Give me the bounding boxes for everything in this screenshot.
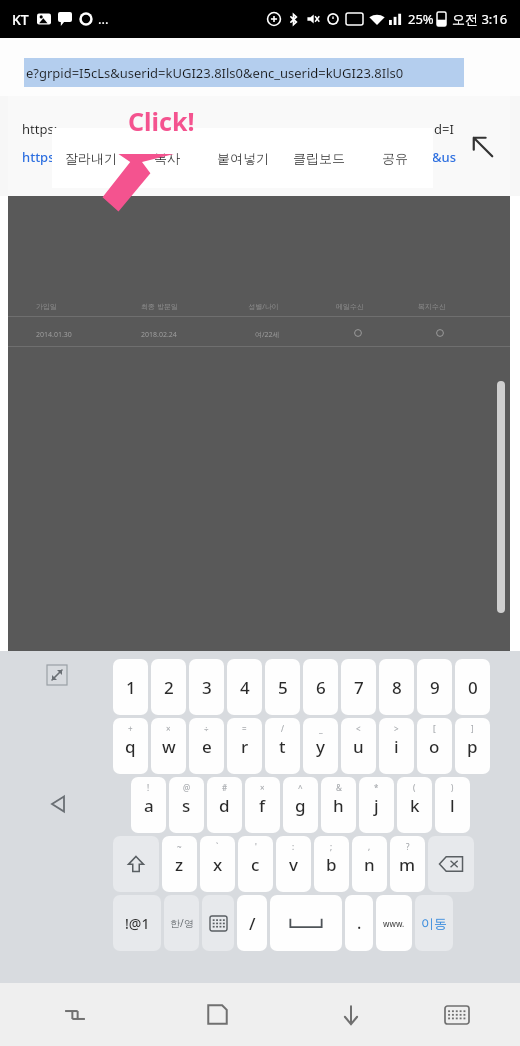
staticText: j bbox=[374, 794, 379, 817]
staticText: 가입일 bbox=[36, 302, 57, 311]
staticText: y bbox=[316, 735, 325, 758]
button[interactable]: 6 bbox=[303, 659, 338, 715]
staticText: / bbox=[249, 912, 256, 935]
button[interactable] bbox=[113, 836, 159, 892]
button[interactable]: Recent apps bbox=[0, 983, 149, 1046]
staticText: / bbox=[281, 723, 284, 734]
button[interactable]: ; bbox=[314, 836, 349, 892]
button[interactable]: space bbox=[270, 895, 342, 951]
button[interactable]: 공유 bbox=[357, 128, 433, 188]
button[interactable]: 9 bbox=[417, 659, 452, 715]
button[interactable]: * bbox=[359, 777, 394, 833]
staticText: > bbox=[394, 723, 399, 734]
button[interactable]: [ bbox=[417, 718, 452, 774]
button[interactable]: × bbox=[245, 777, 280, 833]
button[interactable]: ` bbox=[200, 836, 235, 892]
button[interactable]: 7 bbox=[341, 659, 376, 715]
button[interactable]: = bbox=[227, 718, 262, 774]
button[interactable]: / bbox=[237, 895, 267, 951]
staticText: ) bbox=[451, 782, 454, 793]
button[interactable]: # bbox=[207, 777, 242, 833]
staticText: 붙여넣기 bbox=[217, 150, 269, 166]
staticText: _ bbox=[319, 723, 323, 734]
button[interactable]: Previous bbox=[44, 789, 74, 819]
staticText: # bbox=[222, 782, 228, 793]
staticText: 복사 bbox=[154, 150, 180, 166]
staticText: 3 bbox=[202, 676, 212, 699]
button[interactable]: & bbox=[321, 777, 356, 833]
button[interactable]: < bbox=[341, 718, 376, 774]
button[interactable]: × bbox=[151, 718, 186, 774]
button[interactable]: 복사 bbox=[129, 128, 205, 188]
button[interactable]: 2 bbox=[151, 659, 186, 715]
button[interactable]: : bbox=[276, 836, 311, 892]
button[interactable]: 3 bbox=[189, 659, 224, 715]
button[interactable]: 클립보드 bbox=[281, 128, 357, 188]
button[interactable]: ^ bbox=[283, 777, 318, 833]
staticText: https bbox=[22, 148, 55, 166]
button[interactable]: _ bbox=[303, 718, 338, 774]
staticText: 최종 방문일 bbox=[141, 302, 178, 312]
staticText: 8 bbox=[392, 676, 402, 699]
staticText: 1 bbox=[126, 676, 136, 699]
staticText: g bbox=[295, 794, 306, 817]
staticText: h bbox=[333, 794, 344, 817]
staticText: ] bbox=[471, 723, 474, 734]
button[interactable]: ( bbox=[397, 777, 432, 833]
button[interactable]: 0 bbox=[455, 659, 490, 715]
button[interactable]: 8 bbox=[379, 659, 414, 715]
button[interactable]: 잘라내기 bbox=[52, 128, 129, 188]
button[interactable]: 이동 bbox=[415, 895, 453, 951]
button[interactable] bbox=[428, 836, 474, 892]
button[interactable]: kbd bbox=[202, 895, 234, 951]
button[interactable]: . bbox=[345, 895, 373, 951]
button[interactable]: ' bbox=[238, 836, 273, 892]
staticText: ( bbox=[413, 782, 416, 793]
button[interactable]: 붙여넣기 bbox=[205, 128, 281, 188]
staticText: ! bbox=[147, 782, 150, 793]
staticText: e?grpid=I5cLs&userid=kUGI23.8Ils0&enc_us… bbox=[26, 64, 404, 82]
button[interactable]: ] bbox=[455, 718, 490, 774]
button[interactable]: ) bbox=[435, 777, 470, 833]
staticText: 9 bbox=[430, 676, 440, 699]
staticText: 여/22세 bbox=[255, 330, 280, 340]
button[interactable]: + bbox=[113, 718, 148, 774]
button[interactable]: Hide keyboard bbox=[286, 983, 416, 1046]
staticText: 2018.02.24 bbox=[141, 330, 177, 340]
staticText: , bbox=[368, 841, 371, 852]
staticText: https: bbox=[22, 120, 58, 138]
button[interactable]: www. bbox=[376, 895, 412, 951]
staticText: ? bbox=[406, 841, 410, 852]
staticText: × bbox=[166, 723, 171, 734]
button[interactable]: Home bbox=[149, 983, 286, 1046]
staticText: ` bbox=[216, 841, 219, 852]
button[interactable]: ! bbox=[131, 777, 166, 833]
button[interactable]: @ bbox=[169, 777, 204, 833]
button[interactable]: 1 bbox=[113, 659, 148, 715]
staticText: 5 bbox=[278, 676, 288, 699]
button[interactable]: ÷ bbox=[189, 718, 224, 774]
button[interactable]: !@1 bbox=[113, 895, 161, 951]
button[interactable]: / bbox=[265, 718, 300, 774]
staticText: KT bbox=[12, 10, 29, 29]
button[interactable]: , bbox=[352, 836, 387, 892]
button[interactable]: Keyboard settings bbox=[416, 983, 497, 1046]
staticText: w bbox=[162, 735, 176, 758]
staticText: × bbox=[260, 782, 265, 793]
button[interactable]: 4 bbox=[227, 659, 262, 715]
staticText: @ bbox=[183, 782, 191, 793]
staticText: : bbox=[292, 841, 295, 852]
staticText: e bbox=[202, 735, 212, 758]
staticText: p bbox=[467, 735, 478, 758]
button[interactable]: Resize keyboard bbox=[44, 662, 70, 688]
button[interactable]: 한/영 bbox=[164, 895, 199, 951]
staticText: . bbox=[357, 912, 362, 934]
button[interactable]: ~ bbox=[162, 836, 197, 892]
staticText: = bbox=[242, 723, 247, 734]
button[interactable]: ? bbox=[390, 836, 425, 892]
staticText: x bbox=[213, 853, 223, 876]
button[interactable]: > bbox=[379, 718, 414, 774]
staticText: f bbox=[259, 794, 266, 817]
button[interactable]: 5 bbox=[265, 659, 300, 715]
